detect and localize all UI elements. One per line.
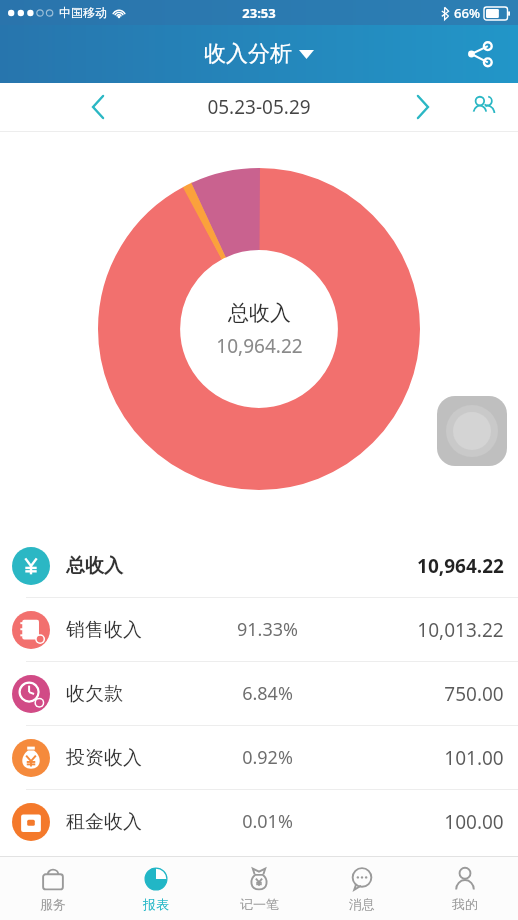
button[interactable]: 记一笔 bbox=[209, 857, 309, 920]
button[interactable]: 投资收入 bbox=[0, 726, 518, 789]
button[interactable]: Previous period bbox=[78, 87, 118, 127]
staticText: 中国移动 bbox=[59, 5, 107, 20]
staticText: 10,013.22 bbox=[417, 617, 504, 643]
staticText: 服务 bbox=[40, 896, 66, 912]
staticText: 投资收入 bbox=[66, 746, 142, 770]
button[interactable]: 报表 bbox=[106, 857, 206, 920]
button[interactable]: 消息 bbox=[312, 857, 412, 920]
staticText: 收欠款 bbox=[66, 682, 123, 706]
button[interactable]: Assistive touch bbox=[437, 396, 507, 466]
button[interactable]: 租金收入 bbox=[0, 790, 518, 853]
staticText: 记一笔 bbox=[240, 896, 279, 912]
staticText: 23:53 bbox=[242, 4, 276, 22]
button[interactable]: 总收入 bbox=[0, 534, 518, 597]
staticText: 750.00 bbox=[444, 681, 504, 707]
button[interactable]: Members bbox=[462, 86, 504, 128]
staticText: 报表 bbox=[143, 896, 169, 912]
staticText: 收入分析 bbox=[204, 40, 292, 68]
button[interactable]: 销售收入 bbox=[0, 598, 518, 661]
button[interactable]: Share bbox=[458, 32, 502, 76]
button[interactable]: 收欠款 bbox=[0, 662, 518, 725]
staticText: 总收入 bbox=[66, 554, 123, 578]
staticText: 消息 bbox=[349, 896, 375, 912]
staticText: 101.00 bbox=[444, 745, 504, 771]
staticText: 总收入 bbox=[228, 300, 291, 326]
staticText: 66% bbox=[454, 4, 480, 22]
staticText: 10,964.22 bbox=[216, 333, 303, 359]
staticText: 10,964.22 bbox=[417, 553, 504, 579]
staticText: 租金收入 bbox=[66, 810, 142, 834]
button[interactable]: 收入分析 bbox=[204, 40, 314, 68]
staticText: 91.33% bbox=[237, 617, 298, 642]
button[interactable]: 服务 bbox=[3, 857, 103, 920]
staticText: 6.84% bbox=[242, 681, 293, 706]
staticText: 100.00 bbox=[444, 809, 504, 835]
staticText: 0.01% bbox=[242, 809, 293, 834]
button[interactable]: Next period bbox=[402, 87, 442, 127]
staticText: 我的 bbox=[452, 896, 478, 912]
staticText: 0.92% bbox=[242, 745, 293, 770]
button[interactable]: 我的 bbox=[415, 857, 515, 920]
staticText: 05.23-05.29 bbox=[207, 94, 311, 120]
staticText: 销售收入 bbox=[66, 618, 142, 642]
